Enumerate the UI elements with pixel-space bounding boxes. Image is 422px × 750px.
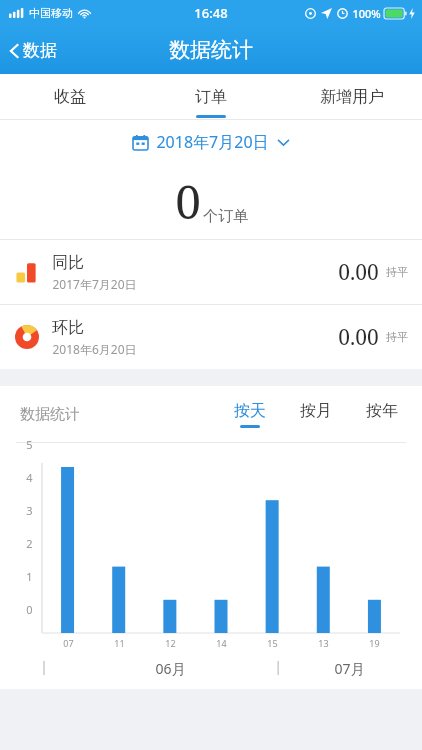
staticText: 2018年6月20日	[52, 341, 137, 357]
staticText: 07月	[334, 659, 365, 678]
staticText: 3	[26, 503, 33, 518]
button[interactable]: 环比	[0, 305, 422, 369]
button[interactable]: 按天	[224, 395, 276, 434]
staticText: 16:48	[194, 4, 228, 22]
staticText: 数据统计	[20, 405, 80, 424]
staticText: 个订单	[203, 207, 248, 226]
button[interactable]: 2018年7月20日	[125, 127, 297, 157]
staticText: 100%	[352, 6, 381, 21]
button[interactable]: 按月	[290, 395, 342, 434]
staticText: 5	[26, 437, 33, 452]
staticText: 订单	[195, 87, 227, 107]
button[interactable]: 数据	[0, 34, 69, 67]
staticText: 按年	[366, 401, 398, 421]
staticText: 收益	[54, 87, 86, 107]
staticText: 14	[216, 637, 227, 649]
staticText: 数据统计	[169, 37, 253, 63]
staticText: 中国移动	[29, 6, 73, 20]
staticText: 0	[26, 602, 33, 617]
staticText: 2	[26, 536, 33, 551]
staticText: 19	[369, 637, 380, 649]
staticText: 2017年7月20日	[52, 276, 137, 292]
button[interactable]: 新增用户	[281, 74, 422, 120]
staticText: 15	[267, 637, 278, 649]
button[interactable]: 订单	[140, 74, 281, 120]
staticText: 4	[26, 470, 33, 485]
staticText: 13	[318, 637, 329, 649]
staticText: 0.00	[338, 323, 379, 352]
staticText: 06月	[155, 659, 186, 678]
staticText: 按月	[300, 401, 332, 421]
staticText: 2018年7月20日	[156, 131, 269, 153]
button[interactable]: 同比	[0, 240, 422, 304]
staticText: 持平	[386, 330, 408, 344]
staticText: 同比	[52, 253, 84, 273]
staticText: 12	[165, 637, 176, 649]
staticText: 0.00	[338, 258, 379, 287]
staticText: 按天	[234, 401, 266, 421]
staticText: 0	[175, 170, 201, 233]
staticText: 环比	[52, 318, 84, 338]
button[interactable]: 收益	[0, 74, 140, 120]
button[interactable]: 按年	[356, 395, 408, 434]
staticText: 持平	[386, 265, 408, 279]
staticText: 07	[63, 637, 74, 649]
staticText: 数据	[23, 40, 57, 61]
staticText: 1	[26, 569, 33, 584]
staticText: 11	[114, 637, 125, 649]
staticText: 新增用户	[320, 87, 384, 107]
